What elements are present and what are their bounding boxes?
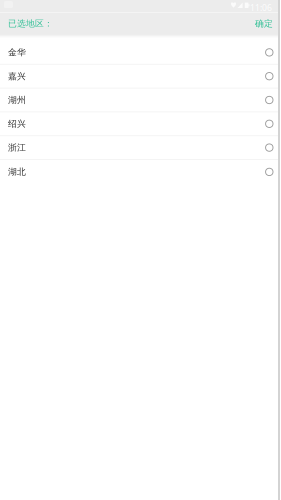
staticText: 已选地区： bbox=[8, 18, 53, 29]
button[interactable]: 湖州 bbox=[0, 89, 281, 112]
staticText: 浙江 bbox=[8, 142, 26, 153]
button[interactable]: 金华 bbox=[0, 41, 281, 65]
staticText: 嘉兴 bbox=[8, 71, 26, 82]
button[interactable]: 湖北 bbox=[0, 160, 281, 184]
staticText: 绍兴 bbox=[8, 118, 26, 129]
staticText: 金华 bbox=[8, 47, 26, 58]
staticText: 湖州 bbox=[8, 94, 26, 106]
button[interactable]: 确定 bbox=[255, 18, 273, 29]
button[interactable]: 嘉兴 bbox=[0, 65, 281, 89]
staticText: 11:06 bbox=[250, 2, 272, 13]
button[interactable]: 绍兴 bbox=[0, 112, 281, 136]
button[interactable]: 浙江 bbox=[0, 136, 281, 160]
staticText: 湖北 bbox=[8, 166, 26, 177]
staticText: 确定 bbox=[255, 18, 273, 29]
